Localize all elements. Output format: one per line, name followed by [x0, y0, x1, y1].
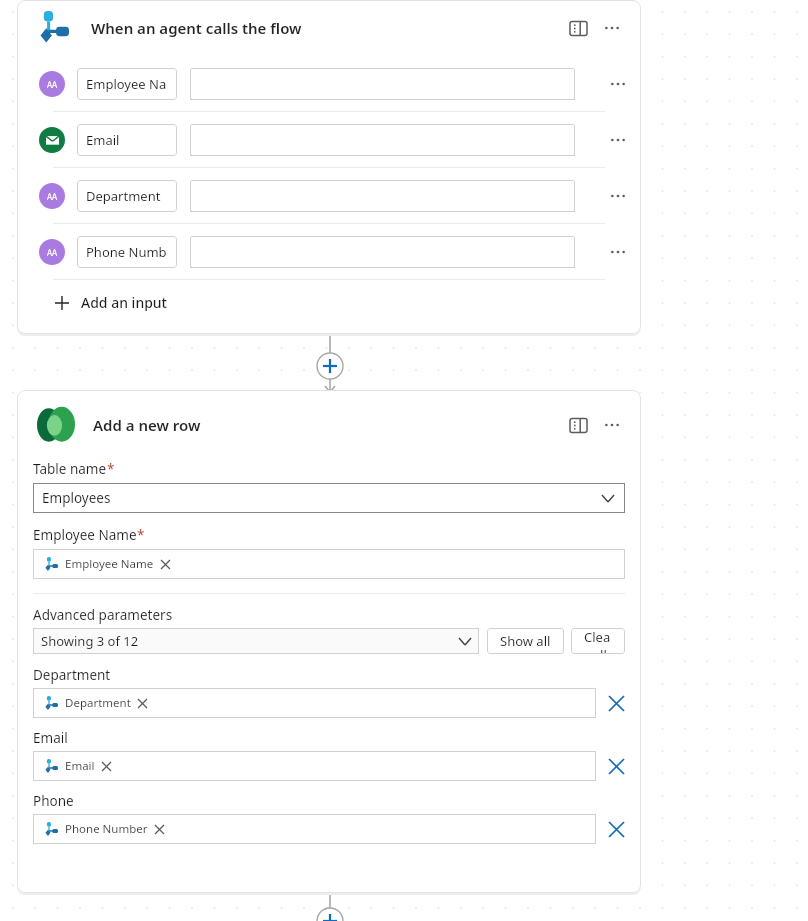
staticText: AA	[47, 79, 58, 90]
button[interactable]: Remove Department parameter	[608, 692, 625, 714]
button[interactable]: More commands for Department	[603, 181, 633, 211]
staticText: Employee Na	[86, 75, 167, 93]
button[interactable]: Clear all	[571, 628, 625, 654]
button[interactable]: Show details panel	[563, 410, 593, 440]
staticText: Add a new row	[93, 415, 201, 435]
button[interactable]: More commands for trigger	[597, 13, 627, 43]
staticText: Add an input	[81, 293, 167, 312]
button[interactable]: Show details panel	[563, 13, 593, 43]
staticText: Showing 3 of 12	[41, 632, 139, 650]
staticText: Phone Numb	[86, 243, 167, 261]
button[interactable]: Employee Name	[33, 549, 625, 579]
button[interactable]: Remove Phone Number	[155, 825, 164, 834]
button[interactable]: Add an input	[17, 280, 641, 325]
staticText: Employee Name	[65, 556, 154, 572]
button[interactable]: Department	[33, 688, 596, 718]
staticText: Clear all	[584, 628, 612, 654]
button[interactable]: More commands for Employee Na	[603, 69, 633, 99]
staticText: Department	[33, 666, 111, 684]
button[interactable]: Remove Department	[138, 699, 147, 708]
button[interactable]: Remove Email	[102, 762, 111, 771]
button[interactable]: When an agent calls the flow	[17, 0, 641, 56]
button[interactable]: AA	[17, 224, 641, 279]
button[interactable]: Email	[17, 112, 641, 167]
staticText: Employees	[42, 489, 111, 507]
staticText: Email	[33, 729, 68, 747]
staticText: Table name	[33, 460, 107, 478]
button[interactable]: Remove Phone parameter	[608, 818, 625, 840]
button[interactable]: AA	[17, 56, 641, 111]
button[interactable]: Showing 3 of 12	[33, 628, 479, 654]
button[interactable]: Add a new row	[17, 390, 641, 460]
staticText: AA	[47, 191, 58, 202]
button[interactable]: Remove Employee Name	[161, 560, 170, 569]
staticText: Advanced parameters	[33, 606, 173, 624]
staticText: *	[107, 460, 115, 478]
staticText: Phone	[33, 792, 74, 810]
staticText: Email	[86, 131, 120, 149]
button[interactable]: More commands for Phone Numb	[603, 237, 633, 267]
button[interactable]: More commands for Email	[603, 125, 633, 155]
staticText: Phone Number	[65, 821, 148, 837]
button[interactable]: Remove Email parameter	[608, 755, 625, 777]
staticText: *	[137, 526, 145, 544]
button[interactable]: Email	[33, 751, 596, 781]
staticText: AA	[47, 247, 58, 258]
staticText: When an agent calls the flow	[91, 18, 302, 38]
button[interactable]: Employees	[33, 483, 625, 513]
button[interactable]: More commands for action	[597, 410, 627, 440]
staticText: Department	[86, 187, 161, 205]
button[interactable]: AA	[17, 168, 641, 223]
staticText: Show all	[500, 632, 551, 650]
button[interactable]: Show all	[487, 628, 564, 654]
staticText: Employee Name	[33, 526, 137, 544]
staticText: Email	[65, 758, 95, 774]
staticText: Department	[65, 695, 131, 711]
button[interactable]: Phone Number	[33, 814, 596, 844]
